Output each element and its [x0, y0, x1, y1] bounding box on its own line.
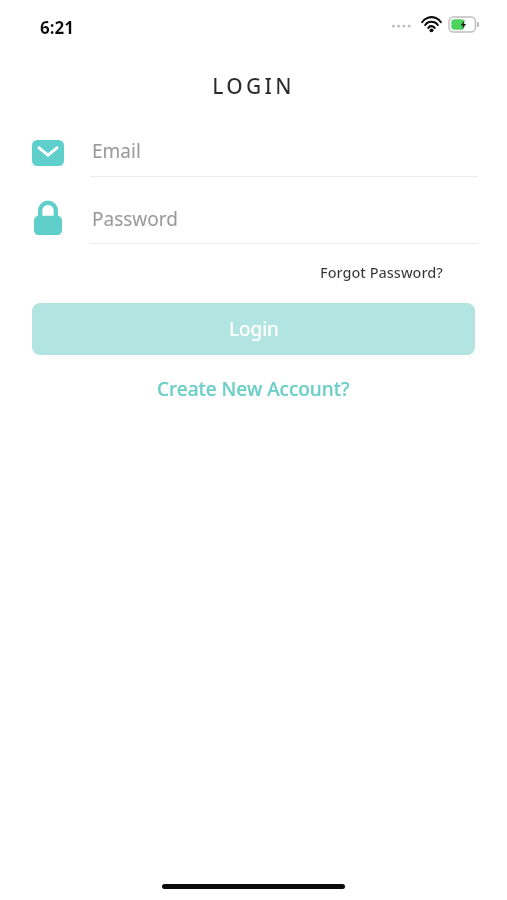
button[interactable]: Create New Account? — [151, 373, 356, 405]
button[interactable]: Forgot Password? — [318, 260, 445, 284]
staticText: Password — [92, 206, 178, 232]
staticText: 6:21 — [40, 16, 74, 39]
button[interactable]: Password — [32, 198, 475, 246]
staticText: Create New Account? — [157, 376, 350, 402]
staticText: Forgot Password? — [320, 262, 443, 282]
other: Password — [34, 202, 62, 235]
button[interactable]: Login — [32, 303, 475, 355]
button[interactable]: Email — [32, 132, 475, 180]
staticText: Login — [229, 316, 279, 342]
staticText: Email — [92, 138, 141, 164]
other: Email — [32, 140, 64, 166]
staticText: LOGIN — [0, 72, 507, 101]
